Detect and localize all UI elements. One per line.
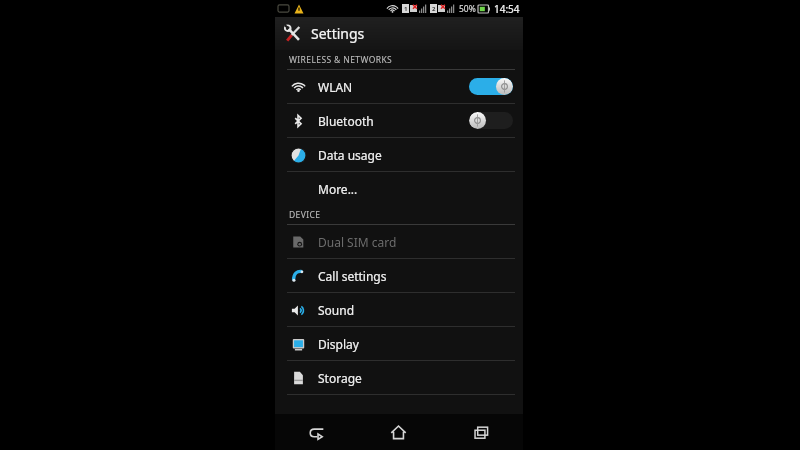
staticText: Data usage xyxy=(318,147,382,163)
button[interactable]: Home xyxy=(357,414,440,450)
staticText: Sound xyxy=(318,302,355,318)
button[interactable]: Storage xyxy=(275,361,523,394)
button[interactable]: WLAN xyxy=(275,70,523,103)
staticText: Display xyxy=(318,336,359,352)
button[interactable]: Back xyxy=(275,414,357,450)
staticText: WLAN xyxy=(318,79,353,95)
button[interactable]: Call settings xyxy=(275,259,523,292)
button[interactable]: More... xyxy=(275,172,523,205)
button[interactable]: Settings xyxy=(275,17,523,50)
staticText: 50% xyxy=(459,3,476,15)
button[interactable]: Recent apps xyxy=(440,414,523,450)
staticText: Call settings xyxy=(318,268,387,284)
staticText: DEVICE xyxy=(289,209,321,221)
staticText: 1 xyxy=(404,5,408,13)
staticText: Storage xyxy=(318,370,362,386)
button[interactable]: Sound xyxy=(275,293,523,326)
staticText: 14:54 xyxy=(494,2,520,16)
staticText: WIRELESS & NETWORKS xyxy=(289,54,393,66)
button[interactable]: Bluetooth xyxy=(275,104,523,137)
button[interactable]: On xyxy=(469,78,513,95)
button[interactable]: Display xyxy=(275,327,523,360)
staticText: Bluetooth xyxy=(318,113,374,129)
staticText: Settings xyxy=(311,24,365,43)
button: Dual SIM card xyxy=(275,225,523,258)
staticText: More... xyxy=(318,181,358,197)
staticText: Dual SIM card xyxy=(318,234,397,250)
button[interactable]: Off xyxy=(469,112,513,129)
button[interactable]: Data usage xyxy=(275,138,523,171)
staticText: 2 xyxy=(432,5,436,13)
